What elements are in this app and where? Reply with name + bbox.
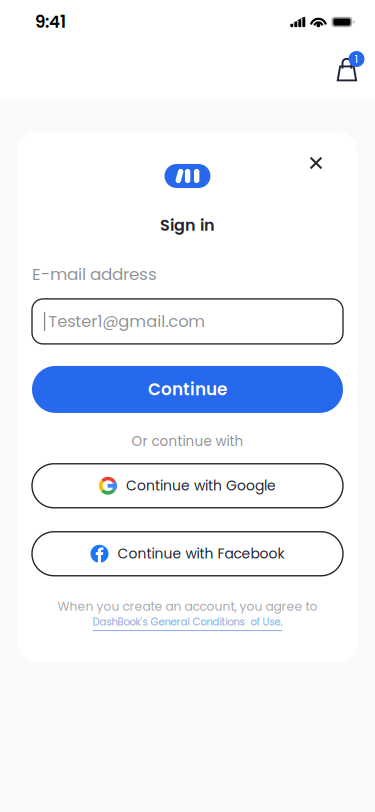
staticText: Or continue with bbox=[131, 432, 243, 451]
staticText: Sign in bbox=[160, 214, 215, 236]
button[interactable]: Close bbox=[298, 145, 334, 181]
staticText: Continue bbox=[148, 378, 227, 401]
button[interactable]: Continue bbox=[32, 366, 343, 413]
staticText: Tester1@gmail.com bbox=[48, 310, 205, 333]
button[interactable]: Continue with Google bbox=[32, 464, 343, 508]
staticText: DashBook's General Conditions of Use. bbox=[92, 615, 282, 629]
staticText: E-mail address bbox=[32, 262, 157, 286]
staticText: 9:41 bbox=[35, 10, 66, 34]
staticText: 1 bbox=[354, 51, 358, 67]
button[interactable]: Continue with Facebook bbox=[32, 532, 343, 576]
button[interactable]: Shopping bag, 1 item bbox=[333, 52, 361, 90]
staticText: Continue with Google bbox=[126, 476, 276, 495]
button[interactable]: DashBook's General Conditions of Use. bbox=[92, 615, 282, 631]
staticText: Continue with Facebook bbox=[117, 544, 284, 563]
staticText: When you create an account, you agree to bbox=[57, 598, 317, 615]
